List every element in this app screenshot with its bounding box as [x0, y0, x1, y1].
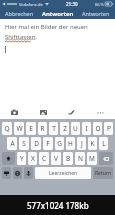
staticText: Q	[4, 124, 10, 133]
staticText: Vodafone.de	[19, 2, 43, 7]
button[interactable]: X	[28, 152, 37, 165]
button[interactable]: Z	[60, 122, 69, 135]
staticText: G	[57, 139, 62, 148]
staticText: R	[40, 124, 45, 133]
staticText: .	[36, 33, 38, 41]
staticText: P	[107, 124, 111, 133]
staticText: J	[81, 139, 83, 148]
staticText: A	[10, 139, 15, 148]
staticText: E	[29, 124, 33, 133]
button[interactable]: F	[43, 137, 53, 150]
button[interactable]: N	[75, 152, 85, 165]
button[interactable]: T	[49, 122, 58, 135]
staticText: Return	[95, 170, 111, 177]
staticText: S	[22, 139, 26, 148]
button[interactable]: Hide keyboard	[2, 167, 11, 179]
button[interactable]: M	[87, 152, 97, 165]
button[interactable]: Leerzeichen	[35, 167, 91, 179]
button[interactable]: L	[99, 137, 108, 150]
button[interactable]: Return	[93, 167, 113, 179]
button[interactable]: P	[104, 122, 113, 135]
button[interactable]: Change keyboard language	[13, 167, 22, 179]
staticText: F	[46, 139, 50, 148]
staticText: T	[52, 124, 56, 133]
staticText: L	[102, 139, 106, 148]
staticText: I	[85, 124, 88, 133]
button[interactable]: Photo library	[38, 107, 49, 118]
button[interactable]: W	[14, 122, 24, 135]
button[interactable]: G	[55, 137, 64, 150]
staticText: 577x1024 178kb	[27, 200, 89, 211]
button[interactable]: O	[93, 122, 102, 135]
button[interactable]: More options	[95, 107, 106, 118]
button[interactable]: Y	[17, 152, 26, 165]
staticText: C	[42, 154, 47, 163]
button[interactable]: Abbrechen	[0, 8, 39, 19]
staticText: U	[73, 124, 78, 133]
button[interactable]: Backspace	[99, 152, 113, 165]
staticText: X	[31, 154, 35, 163]
staticText: H	[68, 139, 73, 148]
staticText: D	[34, 139, 39, 148]
staticText: Leerzeichen	[49, 170, 78, 177]
staticText: Antworten	[82, 10, 110, 17]
button[interactable]: V	[51, 152, 61, 165]
button[interactable]: I	[82, 122, 91, 135]
button[interactable]: A	[7, 137, 17, 150]
staticText: M	[89, 154, 95, 163]
staticText: Y	[20, 154, 24, 163]
staticText: B	[66, 154, 71, 163]
button[interactable]: Antworten	[77, 8, 115, 19]
button[interactable]: Shift	[2, 152, 15, 165]
button[interactable]: Dictation	[24, 167, 33, 179]
button[interactable]: Antworten	[39, 8, 77, 19]
button[interactable]: J	[77, 137, 86, 150]
staticText: Abbrechen	[5, 10, 34, 17]
staticText: 66 %	[95, 2, 104, 7]
button[interactable]: Q	[2, 122, 12, 135]
staticText: Hier mal ein Bilder der neuen	[5, 23, 88, 31]
staticText: V	[54, 154, 58, 163]
staticText: Z	[63, 124, 67, 133]
staticText: K	[90, 139, 95, 148]
staticText: W	[16, 124, 23, 133]
button[interactable]: C	[39, 152, 49, 165]
button[interactable]: Camera	[9, 107, 20, 118]
button[interactable]: H	[66, 137, 75, 150]
button[interactable]: B	[63, 152, 73, 165]
staticText: O	[95, 124, 101, 133]
staticText: N	[78, 154, 83, 163]
button[interactable]: E	[26, 122, 36, 135]
button[interactable]: D	[31, 137, 41, 150]
staticText: 21:30	[66, 1, 78, 7]
button[interactable]: K	[88, 137, 97, 150]
button[interactable]: U	[71, 122, 80, 135]
button[interactable]: Tweet	[66, 107, 77, 118]
button[interactable]: S	[19, 137, 29, 150]
staticText: Shifttasten	[5, 33, 36, 41]
staticText: Antworten	[42, 10, 74, 18]
button[interactable]: R	[38, 122, 47, 135]
